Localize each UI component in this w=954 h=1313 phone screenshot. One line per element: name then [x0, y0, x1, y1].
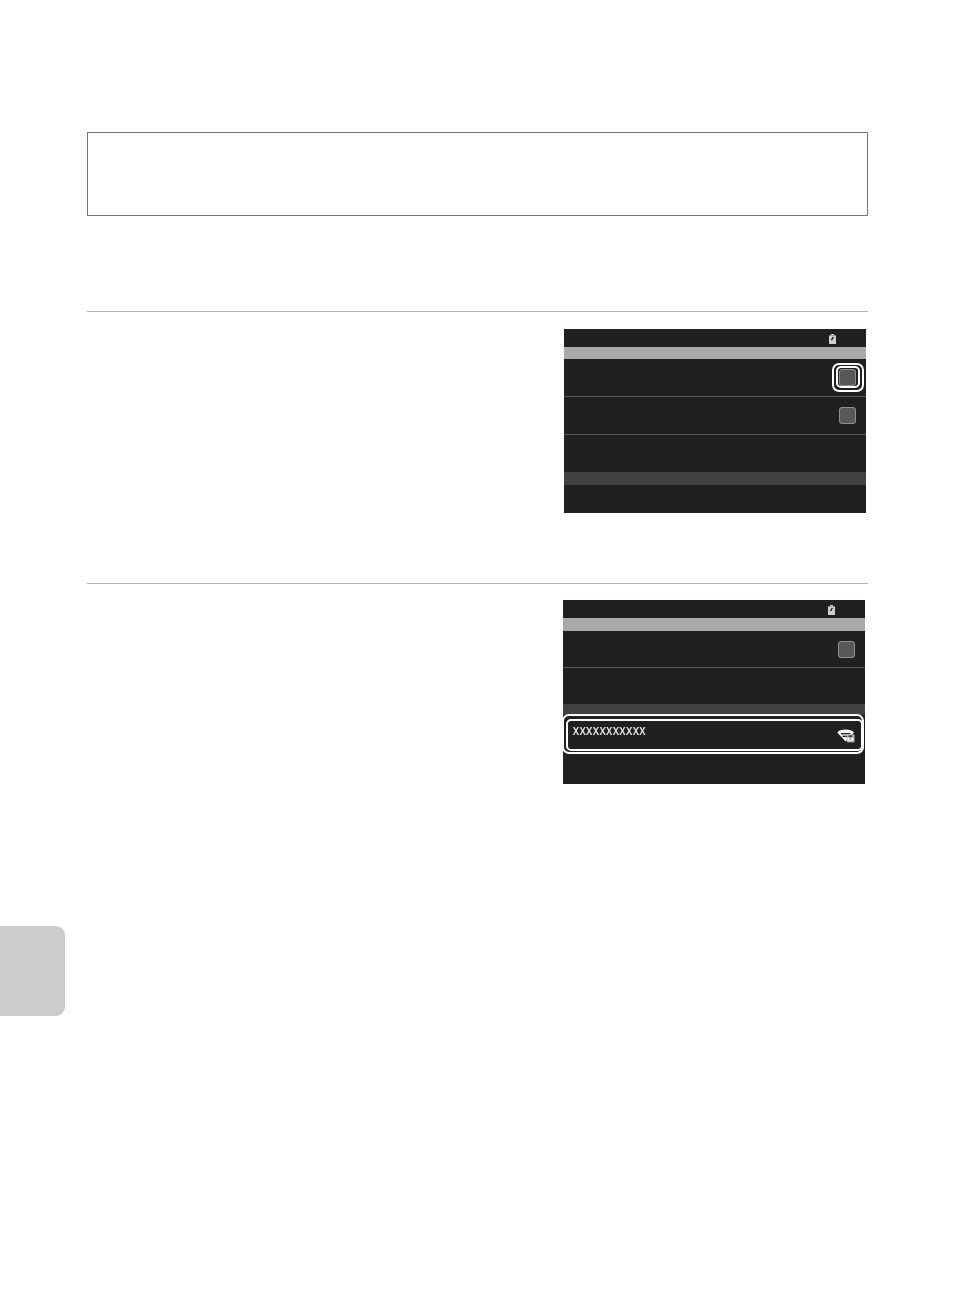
other: Battery: [829, 334, 836, 344]
other: Battery: [828, 605, 835, 615]
button[interactable]: Selected Wi-Fi toggle: [832, 363, 864, 392]
button[interactable]: Toggle: [839, 369, 856, 386]
other: Wi-Fi secured network: [837, 727, 855, 743]
button[interactable]: Toggle: [838, 641, 855, 658]
staticText: XXXXXXXXXXX: [573, 724, 647, 738]
button[interactable]: Toggle: [839, 407, 856, 424]
button[interactable]: Selected network XXXXXXXXXXX: [562, 714, 864, 754]
